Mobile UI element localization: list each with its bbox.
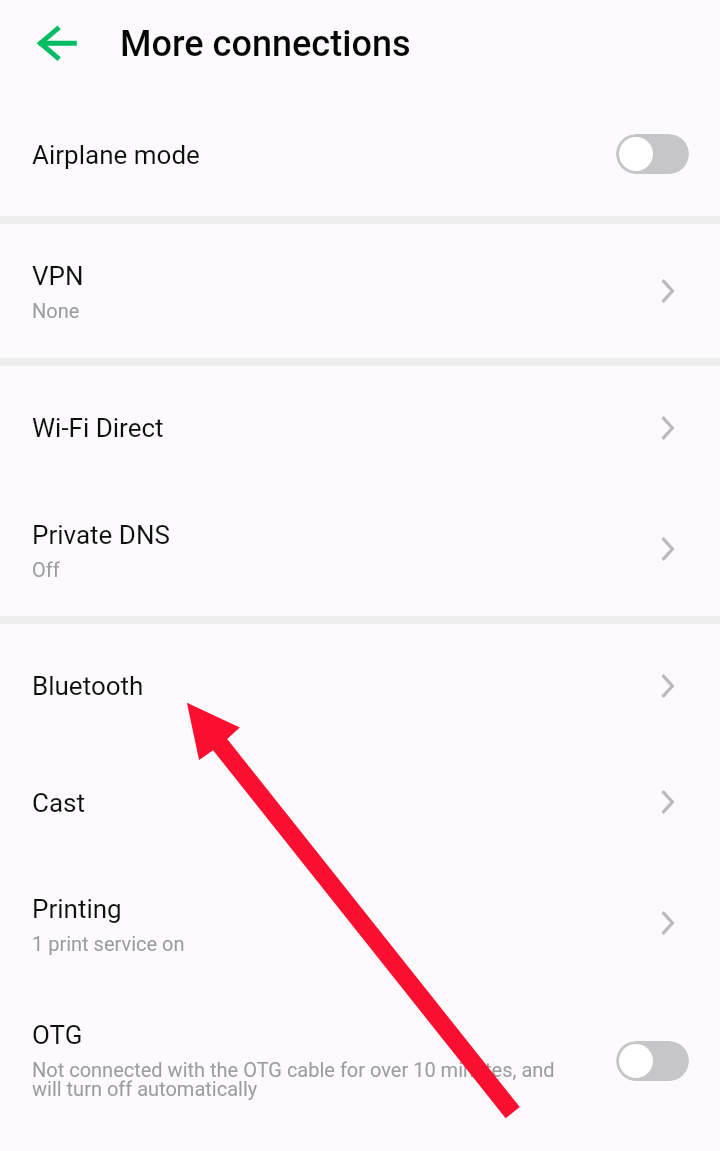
staticText: will turn off automatically [32,1077,258,1100]
staticText: OTG [32,1020,83,1050]
button[interactable]: Private DNS [0,472,720,616]
staticText: Private DNS [32,520,170,550]
button[interactable]: Bluetooth [0,624,720,740]
button[interactable]: Cast [0,740,720,850]
staticText: Cast [32,788,85,818]
staticText: VPN [32,261,84,291]
button[interactable]: Back [8,14,64,70]
button[interactable]: OTG off [616,1041,689,1081]
button[interactable]: Wi-Fi Direct [0,366,720,472]
button[interactable]: Airplane mode off [616,134,689,174]
staticText: Bluetooth [32,671,144,701]
staticText: Off [32,558,60,581]
button[interactable]: Airplane mode [0,88,720,216]
staticText: Printing [32,894,122,924]
staticText: Wi-Fi Direct [32,413,164,443]
staticText: More connections [120,23,411,65]
staticText: Not connected with the OTG cable for ove… [32,1058,555,1081]
staticText: Airplane mode [32,140,200,170]
button[interactable]: Printing [0,850,720,980]
button[interactable]: VPN [0,224,720,358]
button[interactable]: OTG [0,980,720,1125]
staticText: 1 print service on [32,932,185,955]
staticText: None [32,299,80,322]
